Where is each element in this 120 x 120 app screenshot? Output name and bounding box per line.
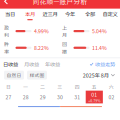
staticText: 02 xyxy=(108,93,114,101)
staticText: 四 xyxy=(75,83,80,90)
staticText: 本月 xyxy=(25,10,35,18)
staticText: 胜率 xyxy=(4,40,9,55)
button[interactable]: 年收益 xyxy=(42,59,63,69)
button[interactable]: 今年 xyxy=(60,9,80,22)
staticText: 27 xyxy=(6,93,12,101)
button[interactable]: 收益走势 xyxy=(90,59,120,69)
staticText: 月收益 xyxy=(24,60,39,68)
staticText: 五 xyxy=(92,83,97,90)
staticText: +0.79% xyxy=(88,98,100,103)
staticText: 日 xyxy=(6,83,11,90)
staticText: 31 xyxy=(74,93,80,101)
staticText: 5.04% xyxy=(92,27,107,35)
button[interactable]: 01 xyxy=(86,91,103,104)
staticText: 11.4% xyxy=(92,44,107,51)
staticText: 年收益 xyxy=(45,60,60,68)
staticText: 4.99% xyxy=(34,27,49,35)
button[interactable]: 31 xyxy=(69,91,86,104)
button[interactable]: 2025年 8月 xyxy=(83,70,120,80)
button[interactable]: 样式图 xyxy=(27,71,47,80)
staticText: 六 xyxy=(109,83,114,90)
staticText: 今年 xyxy=(65,10,75,18)
staticText: 28 xyxy=(23,93,29,101)
staticText: 盈利 xyxy=(4,24,9,38)
staticText: 回撤 xyxy=(62,40,67,55)
staticText: 8.22% xyxy=(34,44,49,51)
staticText: 收益走势 xyxy=(95,60,115,68)
button[interactable]: 全部 xyxy=(80,9,100,22)
button[interactable]: 02 xyxy=(103,91,120,104)
staticText: 自然日 xyxy=(6,72,21,79)
button[interactable]: 当日 xyxy=(0,9,20,22)
button[interactable]: 29 xyxy=(34,91,51,104)
button[interactable]: 自然日 xyxy=(4,71,24,80)
button[interactable]: 近三月 xyxy=(40,9,60,22)
button[interactable]: 28 xyxy=(17,91,34,104)
staticText: 三 xyxy=(57,83,62,90)
button[interactable]: 本月 xyxy=(20,9,40,22)
button[interactable]: 日收益 xyxy=(0,59,21,69)
button[interactable]: 返回 xyxy=(0,0,12,8)
staticText: 30 xyxy=(57,93,63,101)
staticText: 当日 xyxy=(5,10,15,18)
staticText: 自定义 xyxy=(102,10,117,18)
staticText: 全部 xyxy=(85,10,95,18)
button[interactable]: 27 xyxy=(0,91,17,104)
button[interactable]: 自定义 xyxy=(100,9,120,22)
staticText: 样式图 xyxy=(29,72,44,79)
staticText: 2025年 8月 xyxy=(83,71,109,79)
staticText: 近三月 xyxy=(42,10,57,18)
staticText: 29 xyxy=(40,93,46,101)
staticText: 日收益 xyxy=(3,60,18,68)
staticText: 一 xyxy=(23,83,28,90)
button[interactable]: 月收益 xyxy=(21,59,42,69)
staticText: 二 xyxy=(40,83,45,90)
staticText: 同花顺—账户分析 xyxy=(32,0,87,6)
staticText: 上月 xyxy=(62,24,67,38)
button[interactable]: 30 xyxy=(51,91,68,104)
staticText: 01 xyxy=(91,91,97,98)
